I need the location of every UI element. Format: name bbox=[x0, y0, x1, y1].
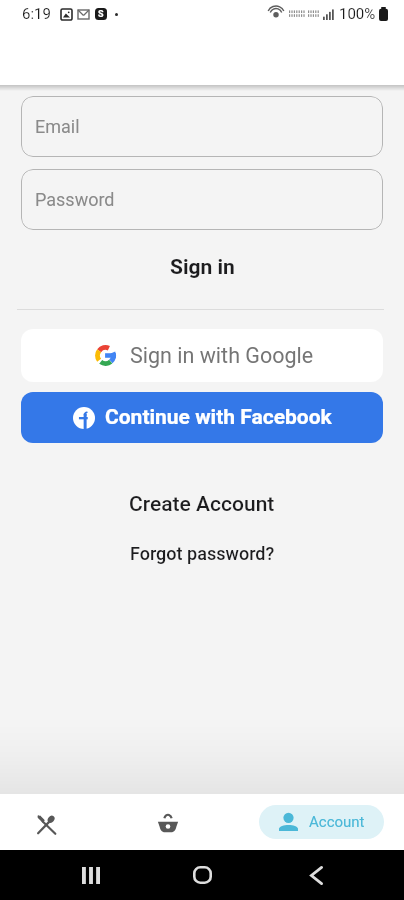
button[interactable]: Restaurants bbox=[0, 794, 92, 850]
staticText: Password bbox=[35, 189, 115, 210]
button[interactable]: Create Account bbox=[0, 486, 404, 522]
staticText: Create Account bbox=[129, 492, 275, 517]
button[interactable]: Email bbox=[21, 96, 383, 157]
staticText: 6:19 bbox=[22, 5, 51, 23]
staticText: Continue with Facebook bbox=[105, 405, 332, 430]
staticText: Account bbox=[309, 813, 365, 831]
button[interactable]: Account bbox=[259, 805, 384, 839]
button[interactable]: Back bbox=[293, 850, 339, 900]
button[interactable]: Home bbox=[179, 850, 225, 900]
staticText: Forgot password? bbox=[130, 543, 275, 564]
button[interactable]: Sign in bbox=[0, 247, 404, 287]
staticText: Sign in bbox=[170, 255, 235, 280]
staticText: 100% bbox=[339, 5, 376, 23]
staticText: Email bbox=[35, 116, 80, 137]
button[interactable]: Sign in with Google bbox=[21, 329, 383, 382]
button[interactable]: Password bbox=[21, 169, 383, 230]
button[interactable]: Recent apps bbox=[68, 850, 114, 900]
button[interactable]: Forgot password? bbox=[0, 538, 404, 568]
button[interactable]: Continue with Facebook bbox=[21, 392, 383, 443]
button[interactable]: Basket bbox=[92, 794, 243, 850]
staticText: S bbox=[98, 9, 104, 20]
staticText: Sign in with Google bbox=[130, 343, 314, 368]
